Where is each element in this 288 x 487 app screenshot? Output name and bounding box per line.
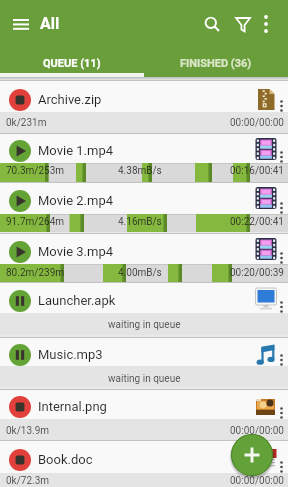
staticText: 00:00/00:00	[230, 117, 284, 129]
button[interactable]	[231, 434, 273, 476]
button[interactable]: Movie 2.mp4	[0, 182, 288, 232]
button[interactable]: Music.mp3	[0, 337, 288, 387]
staticText: 4.00mB/s	[118, 267, 162, 279]
button[interactable]: Movie 3.mp4	[0, 233, 288, 282]
staticText: 70.3m/253m	[6, 165, 65, 177]
button[interactable]: FINISHED (36)	[144, 48, 288, 77]
staticText: 4.38mB/s	[118, 165, 162, 177]
staticText: Archive.zip	[38, 92, 102, 107]
staticText: 00:00/00:00	[230, 425, 284, 437]
staticText: 00:22/00:41	[230, 216, 284, 228]
staticText: waiting in queue	[108, 319, 181, 331]
button[interactable]: Movie 1.mp4	[0, 133, 288, 181]
button[interactable]	[198, 10, 227, 39]
button[interactable]: QUEUE (11)	[0, 48, 144, 77]
staticText: 80.2m/239m	[6, 267, 65, 279]
staticText: Book.doc	[38, 452, 93, 467]
staticText: Movie 1.mp4	[38, 143, 113, 158]
button[interactable]	[252, 10, 280, 38]
button[interactable]: Internal.png	[0, 389, 288, 439]
staticText: Movie 2.mp4	[38, 193, 113, 208]
staticText: All	[40, 14, 60, 33]
staticText: Music.mp3	[38, 347, 103, 362]
button[interactable]: Archive.zip	[0, 80, 288, 133]
staticText: Movie 3.mp4	[38, 244, 113, 259]
staticText: FINISHED (36)	[180, 57, 252, 70]
staticText: 4.16mB/s	[118, 216, 162, 228]
staticText: 00:16/00:41	[230, 165, 284, 177]
staticText: Internal.png	[38, 399, 107, 414]
staticText: QUEUE (11)	[43, 57, 101, 70]
staticText: 00:00/00:00	[230, 475, 284, 487]
staticText: 0k/231m	[6, 117, 47, 129]
button[interactable]	[6, 9, 36, 39]
staticText: 0k/72.3m	[6, 475, 50, 487]
staticText: 00:20/00:39	[230, 267, 284, 279]
staticText: 91.7m/264m	[6, 216, 65, 228]
staticText: 0k/13.9m	[6, 425, 50, 437]
button[interactable]	[228, 10, 257, 39]
button[interactable]: Book.doc	[0, 440, 288, 487]
staticText: Launcher.apk	[38, 293, 116, 308]
button[interactable]: Launcher.apk	[0, 282, 288, 335]
staticText: waiting in queue	[108, 373, 181, 385]
